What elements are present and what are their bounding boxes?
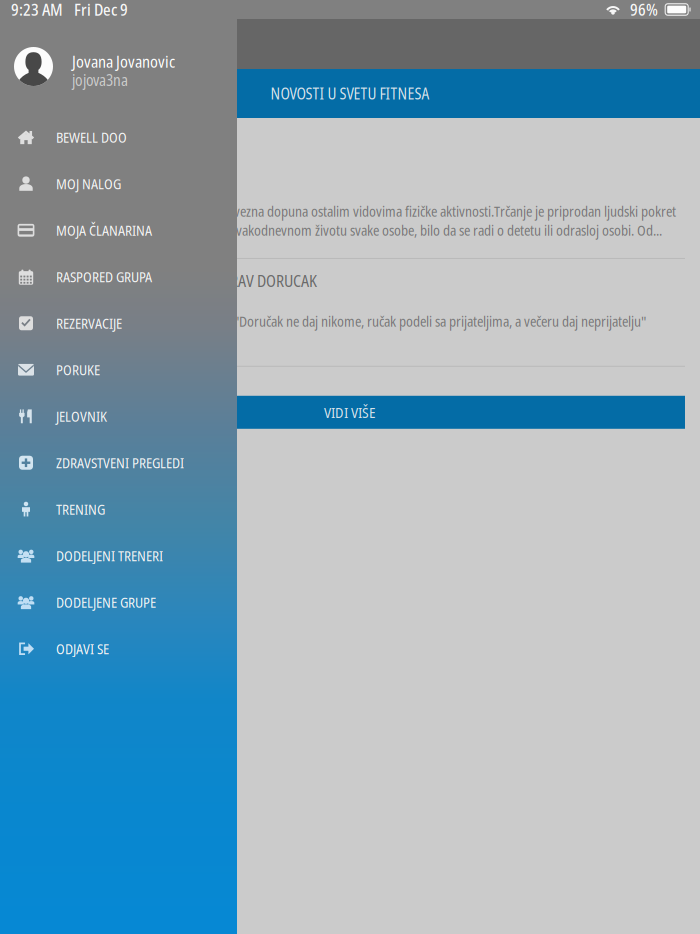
- button[interactable]: Jovana Jovanovic: [0, 19, 237, 114]
- button[interactable]: RASPORED GRUPA: [0, 253, 237, 300]
- staticText: ZDRAV DORUCAK: [214, 270, 317, 292]
- staticText: Jovana Jovanovic: [72, 51, 175, 72]
- staticText: Fri Dec 9: [74, 0, 128, 20]
- staticText: DODELJENI TRENERI: [56, 546, 163, 565]
- staticText: 9:23 AM: [11, 0, 63, 20]
- staticText: koji je prisutan u svakodnevnom životu s…: [140, 221, 662, 240]
- button[interactable]: JELOVNIK: [0, 393, 237, 439]
- button[interactable]: DODELJENE GRUPE: [0, 579, 237, 625]
- staticText: 96%: [630, 0, 658, 20]
- button[interactable]: MOJ NALOG: [0, 160, 237, 207]
- staticText: "Doručak ne daj nikome, ručak podeli sa …: [234, 312, 646, 331]
- button[interactable]: REZERVACIJE: [0, 300, 237, 346]
- staticText: ODJAVI SE: [56, 639, 109, 658]
- staticText: TRČANJE: [16, 143, 68, 165]
- button[interactable]: MOJA ČLANARINA: [0, 207, 237, 253]
- button[interactable]: ODJAVI SE: [0, 625, 237, 672]
- staticText: JELOVNIK: [56, 407, 107, 426]
- button[interactable]: PORUKE: [0, 346, 237, 393]
- staticText: ZDRAVSTVENI PREGLEDI: [56, 453, 184, 472]
- staticText: VIDI VIŠE: [324, 402, 376, 422]
- staticText: jojova3na: [72, 70, 128, 90]
- button[interactable]: VIDI VIŠE: [15, 396, 685, 429]
- button[interactable]: TRENING: [0, 486, 237, 532]
- staticText: Trčanje je neophodna i obavezna dopuna o…: [91, 202, 676, 221]
- staticText: MOJ NALOG: [56, 174, 121, 193]
- staticText: BEWELL DOO: [56, 128, 127, 147]
- staticText: NOVOSTI U SVETU FITNESA: [270, 83, 429, 104]
- button[interactable]: ZDRAVSTVENI PREGLEDI: [0, 439, 237, 486]
- staticText: DODELJENE GRUPE: [56, 593, 156, 612]
- button[interactable]: DODELJENI TRENERI: [0, 532, 237, 579]
- staticText: REZERVACIJE: [56, 314, 122, 333]
- staticText: TRENING: [56, 500, 105, 519]
- staticText: PORUKE: [56, 360, 100, 379]
- staticText: MOJA ČLANARINA: [56, 221, 152, 240]
- button[interactable]: BEWELL DOO: [0, 114, 237, 160]
- staticText: RASPORED GRUPA: [56, 267, 152, 286]
